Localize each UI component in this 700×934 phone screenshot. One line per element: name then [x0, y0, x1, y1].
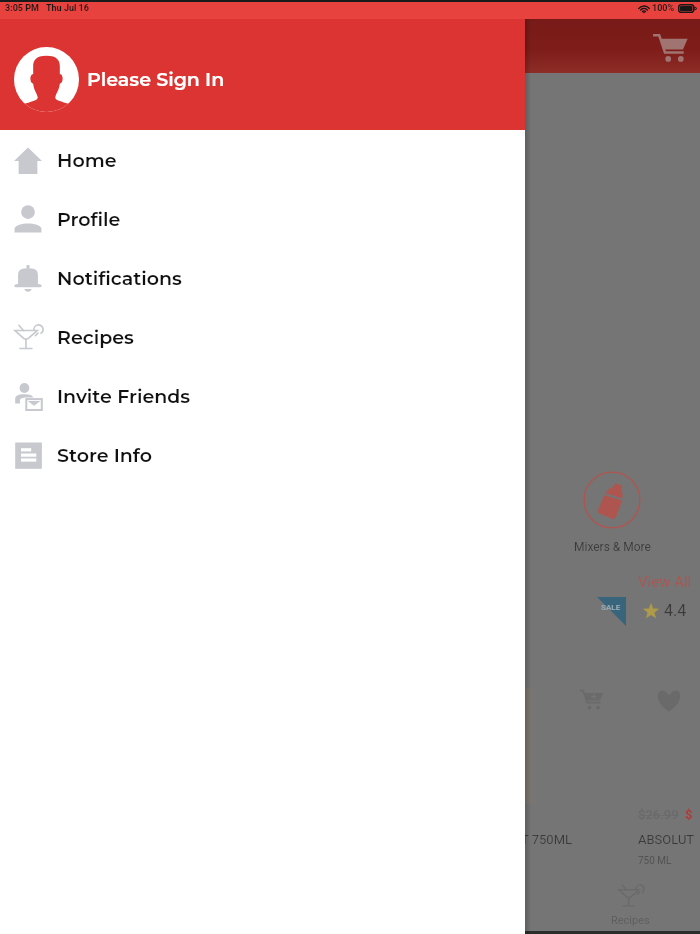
- staticText: T 750ML: [521, 832, 572, 847]
- staticText: 3:05 PM: [5, 3, 39, 14]
- button[interactable]: View All: [638, 573, 692, 591]
- staticText: $26.99: [638, 807, 679, 822]
- staticText: 750 ML: [638, 855, 672, 867]
- staticText: ABSOLUT: [638, 832, 695, 847]
- button[interactable]: Store Info: [0, 426, 525, 485]
- button[interactable]: Notifications: [0, 249, 525, 308]
- staticText: Profile: [57, 208, 121, 231]
- staticText: $: [685, 807, 693, 822]
- button[interactable]: Cart: [652, 28, 688, 64]
- staticText: Invite Friends: [57, 385, 191, 408]
- staticText: Home: [57, 149, 117, 172]
- staticText: Notifications: [57, 267, 182, 290]
- staticText: Recipes: [57, 326, 134, 349]
- staticText: Please Sign In: [87, 68, 225, 91]
- staticText: Store Info: [57, 444, 152, 467]
- button[interactable]: Recipes: [0, 308, 525, 367]
- staticText: Recipes: [611, 914, 650, 927]
- button[interactable]: Recipes: [602, 884, 658, 927]
- button[interactable]: Profile: [0, 190, 525, 249]
- staticText: Mixers & More: [574, 540, 651, 554]
- staticText: Thu Jul 16: [46, 3, 89, 14]
- staticText: 4.4: [664, 601, 687, 620]
- button[interactable]: Home: [0, 131, 525, 190]
- button[interactable]: Mixers & More: [583, 471, 641, 529]
- staticText: 100%: [652, 3, 675, 14]
- staticText: SALE: [601, 603, 621, 612]
- button[interactable]: Invite Friends: [0, 367, 525, 426]
